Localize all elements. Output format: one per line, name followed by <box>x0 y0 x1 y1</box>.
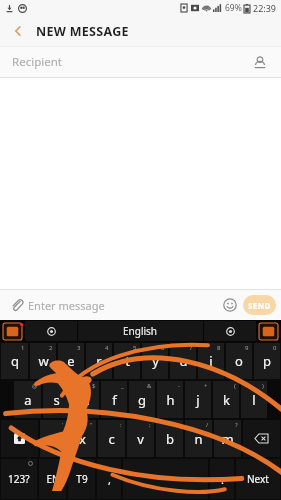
staticText: 123? <box>8 472 30 486</box>
staticText: & <box>147 382 152 390</box>
button[interactable]: j <box>185 381 211 418</box>
staticText: u <box>179 352 188 370</box>
staticText: p <box>263 352 271 370</box>
staticText: SEND <box>248 300 271 311</box>
button[interactable]: Settings <box>25 321 77 341</box>
staticText: s <box>53 391 60 409</box>
staticText: x <box>79 430 86 448</box>
staticText: e <box>67 352 75 370</box>
staticText: d <box>82 391 90 409</box>
staticText: 1 <box>21 344 25 352</box>
button[interactable]: u <box>170 343 196 379</box>
button[interactable]: SEND <box>243 295 276 315</box>
button[interactable]: r <box>86 343 112 379</box>
button[interactable]: o <box>226 343 252 379</box>
staticText: q <box>11 352 19 370</box>
staticText: Next <box>247 472 269 486</box>
button[interactable]: b <box>156 420 183 457</box>
button[interactable]: d <box>72 381 99 418</box>
button[interactable]: Stickers <box>259 323 278 340</box>
staticText: 6 <box>161 344 165 352</box>
other: Settings <box>226 327 235 336</box>
staticText: l <box>252 391 256 409</box>
staticText: + <box>204 382 208 390</box>
button[interactable]: c <box>98 420 125 457</box>
staticText: 69% <box>225 2 242 14</box>
button[interactable]: p <box>254 343 280 379</box>
staticText: T9 <box>76 472 88 486</box>
button[interactable]: i <box>198 343 224 379</box>
staticText: 4 <box>105 344 109 352</box>
button[interactable]: t <box>114 343 140 379</box>
staticText: 3 <box>77 344 81 352</box>
button[interactable]: q <box>1 343 28 379</box>
button[interactable]: Recipient <box>0 47 281 77</box>
staticText: EN <box>46 472 60 486</box>
button[interactable]: m <box>214 420 241 457</box>
staticText: 2 <box>49 344 53 352</box>
button[interactable]: Back <box>8 21 28 41</box>
staticText: z <box>50 430 57 448</box>
button[interactable]: Settings <box>204 321 256 341</box>
staticText: n <box>194 430 203 448</box>
button[interactable]: Shift <box>1 420 38 457</box>
button[interactable]: z <box>40 420 67 457</box>
staticText: 5 <box>133 344 137 352</box>
button[interactable]: Space <box>123 459 208 499</box>
staticText: c <box>108 430 115 448</box>
staticText: i <box>209 352 213 370</box>
staticText: ! <box>178 421 180 429</box>
button[interactable]: 123? <box>1 459 37 499</box>
staticText: " <box>90 421 93 429</box>
staticText: f <box>112 391 117 409</box>
button[interactable]: g <box>129 381 155 418</box>
staticText: 22:39 <box>253 2 277 14</box>
button[interactable]: f <box>101 381 127 418</box>
button[interactable]: . <box>210 459 234 499</box>
button[interactable]: T9 <box>68 459 95 499</box>
button[interactable]: Backspace <box>243 420 280 457</box>
button[interactable]: y <box>142 343 168 379</box>
button[interactable]: English <box>78 321 203 341</box>
button[interactable]: Add contact <box>249 51 271 73</box>
staticText: ( <box>234 382 236 390</box>
button[interactable]: k <box>213 381 239 418</box>
staticText: . <box>221 472 224 487</box>
button[interactable]: Attach <box>6 294 28 316</box>
button[interactable]: Next <box>236 459 280 499</box>
staticText: / <box>206 421 209 429</box>
button[interactable]: Emoji <box>219 294 241 316</box>
staticText: ? <box>235 421 238 429</box>
button[interactable]: EN <box>39 459 66 499</box>
button[interactable]: s <box>43 381 70 418</box>
staticText: 9 <box>245 344 249 352</box>
staticText: v <box>137 430 144 448</box>
staticText: b <box>166 430 174 448</box>
staticText: g <box>138 391 146 409</box>
button[interactable]: w <box>30 343 56 379</box>
staticText: - <box>178 382 180 390</box>
button[interactable]: a <box>14 381 41 418</box>
staticText: _ <box>121 382 124 390</box>
staticText: t <box>125 352 130 370</box>
button[interactable]: l <box>241 381 267 418</box>
other: Settings <box>47 327 56 336</box>
staticText: Recipient <box>12 54 62 70</box>
button[interactable]: v <box>127 420 154 457</box>
staticText: j <box>196 391 200 409</box>
staticText: h <box>166 391 175 409</box>
staticText: Enter message <box>28 298 105 313</box>
button[interactable]: h <box>157 381 183 418</box>
staticText: , <box>108 472 111 487</box>
staticText: o <box>235 352 243 370</box>
button[interactable]: , <box>97 459 121 499</box>
staticText: ; <box>149 421 151 429</box>
button[interactable]: n <box>185 420 212 457</box>
button[interactable]: e <box>58 343 84 379</box>
staticText: @ <box>32 382 38 390</box>
button[interactable]: Themes <box>3 323 22 340</box>
staticText: r <box>96 352 102 370</box>
staticText: English <box>123 324 158 338</box>
button[interactable]: x <box>69 420 96 457</box>
